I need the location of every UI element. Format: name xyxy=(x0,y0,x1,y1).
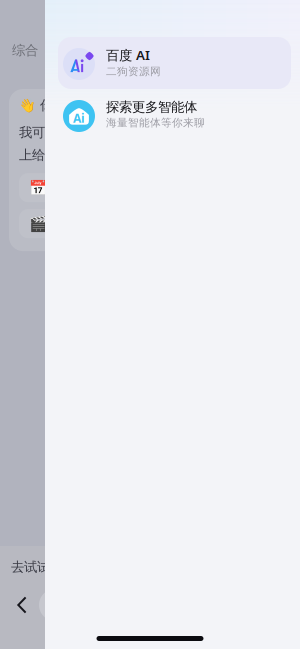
staticText: 🎬 xyxy=(29,215,47,232)
staticText: 📅 xyxy=(29,179,47,196)
staticText: 去试试 xyxy=(11,559,50,575)
staticText: 上给你帮助和建议 xyxy=(19,147,123,163)
staticText: 百度 AI xyxy=(106,46,150,64)
staticText: 我可以为你解答各类 xyxy=(19,124,136,141)
staticText: 探索更多智能体 xyxy=(106,99,197,115)
staticText: 👋 你好，我是二狗 xyxy=(19,97,131,113)
button[interactable]: Back xyxy=(10,589,34,620)
staticText: 综合 xyxy=(12,42,38,58)
button[interactable]: 百度 AI xyxy=(58,37,291,89)
button[interactable]: Ai xyxy=(58,89,291,141)
staticText: 二狗资源网 xyxy=(106,65,161,78)
staticText: Ai xyxy=(73,110,85,126)
staticText: 海量智能体等你来聊 xyxy=(106,116,205,129)
